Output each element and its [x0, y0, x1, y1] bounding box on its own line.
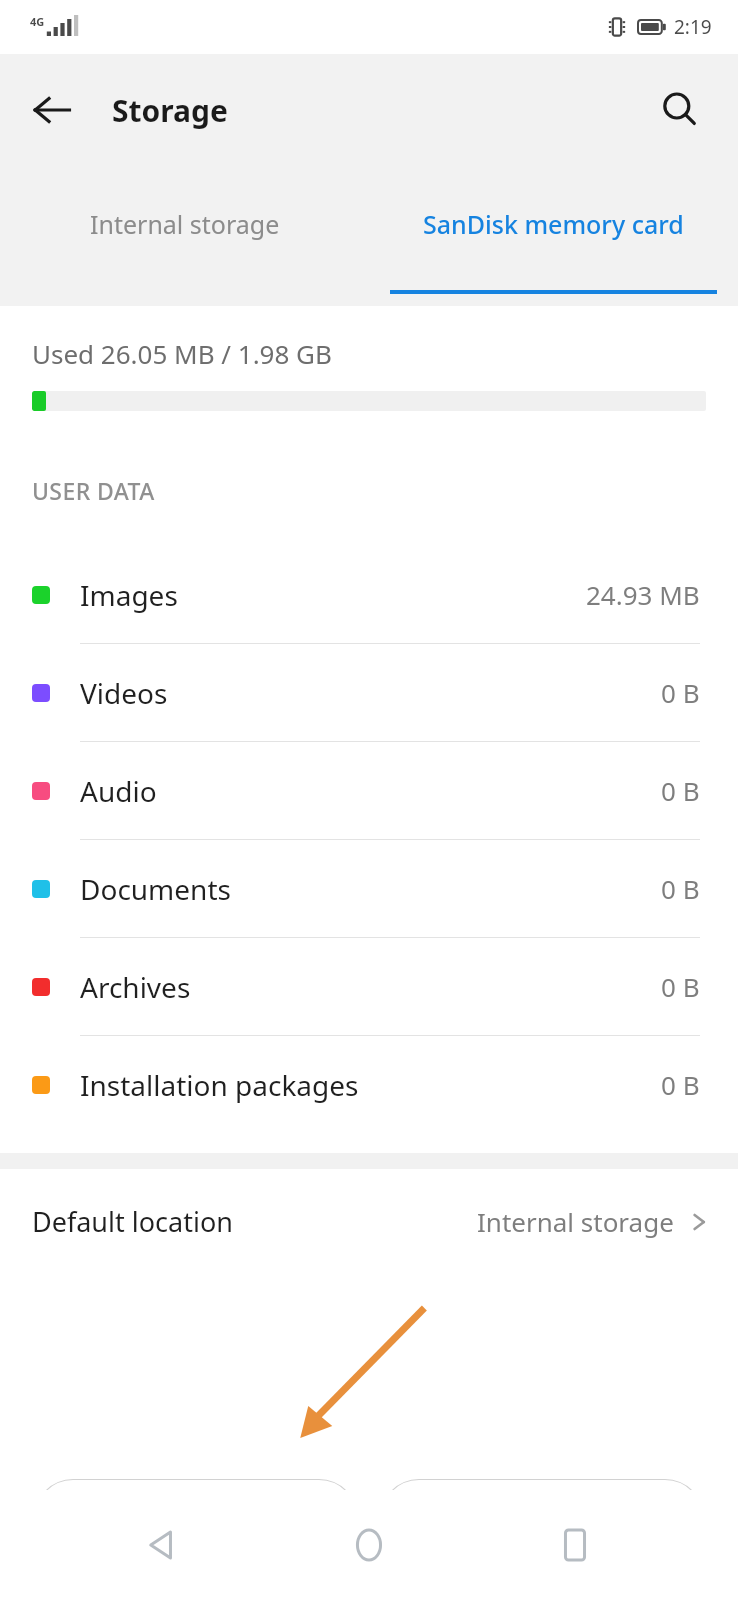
staticText: Videos	[80, 674, 168, 712]
staticText: Storage	[112, 90, 228, 131]
staticText: Audio	[80, 772, 157, 810]
staticText: Documents	[80, 870, 231, 908]
button[interactable]: Default location	[0, 1169, 738, 1273]
button[interactable]: Home	[326, 1502, 412, 1588]
button[interactable]: Installation packages	[0, 1036, 738, 1133]
staticText: Images	[80, 576, 178, 614]
button[interactable]: Recents	[532, 1502, 618, 1588]
staticText: 0 B	[661, 871, 700, 906]
button[interactable]: UNMOUNT	[34, 1479, 358, 1557]
staticText: Used 26.05 MB / 1.98 GB	[32, 336, 332, 371]
button[interactable]: Audio	[0, 742, 738, 839]
staticText: 24.93 MB	[586, 577, 700, 612]
staticText: 0 B	[661, 969, 700, 1004]
staticText: 0 B	[661, 773, 700, 808]
staticText: Internal storage	[477, 1204, 674, 1239]
staticText: 0 B	[661, 675, 700, 710]
staticText: USER DATA	[32, 475, 155, 506]
staticText: Installation packages	[80, 1066, 359, 1104]
button[interactable]: Back	[16, 74, 88, 146]
button[interactable]: Archives	[0, 938, 738, 1035]
staticText: 4G	[30, 14, 45, 29]
staticText: 0 B	[661, 1067, 700, 1102]
button[interactable]: Internal storage	[0, 166, 369, 306]
staticText: Default location	[32, 1203, 233, 1240]
button[interactable]: FORMAT	[380, 1479, 704, 1557]
staticText: UNMOUNT	[125, 1501, 267, 1536]
staticText: Internal storage	[90, 207, 280, 241]
button[interactable]: Search	[644, 74, 716, 146]
staticText: 2:19	[674, 14, 712, 40]
button[interactable]: Back	[120, 1502, 206, 1588]
button[interactable]: Images	[0, 546, 738, 643]
button[interactable]: Documents	[0, 840, 738, 937]
staticText: FORMAT	[488, 1501, 596, 1536]
staticText: Archives	[80, 968, 191, 1006]
button[interactable]: SanDisk memory card	[369, 166, 738, 306]
staticText: SanDisk memory card	[423, 207, 684, 241]
button[interactable]: Videos	[0, 644, 738, 741]
